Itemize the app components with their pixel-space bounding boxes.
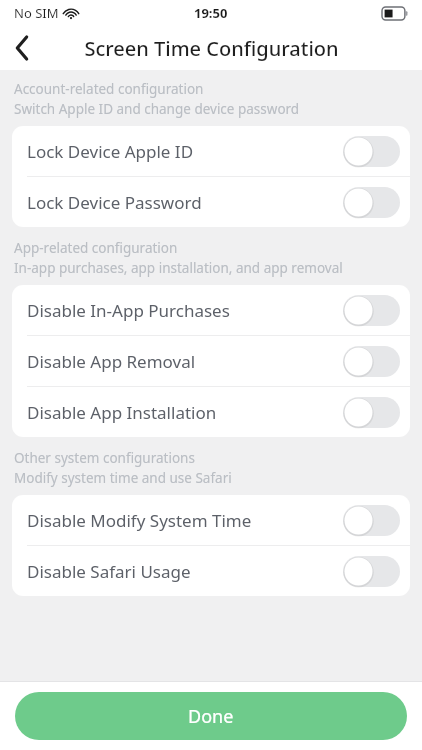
staticText: Done xyxy=(188,704,234,729)
button[interactable]: Back xyxy=(0,26,44,70)
staticText: 19:50 xyxy=(194,4,228,22)
button[interactable]: Disable In-App Purchases xyxy=(12,285,410,335)
button[interactable]: Toggle xyxy=(343,187,400,218)
staticText: Disable Modify System Time xyxy=(27,509,252,532)
staticText: Lock Device Apple ID xyxy=(27,140,194,163)
staticText: Switch Apple ID and change device passwo… xyxy=(14,100,300,118)
button[interactable]: Toggle xyxy=(343,346,400,377)
button[interactable]: Toggle xyxy=(343,397,400,428)
staticText: Account-related configuration xyxy=(14,80,204,98)
button[interactable]: Toggle xyxy=(343,505,400,536)
staticText: Other system configurations xyxy=(14,449,195,467)
staticText: Modify system time and use Safari xyxy=(14,469,232,487)
button[interactable]: Disable Safari Usage xyxy=(12,546,410,596)
button[interactable]: Lock Device Apple ID xyxy=(12,126,410,176)
button[interactable]: Disable App Installation xyxy=(12,387,410,437)
button[interactable]: Disable App Removal xyxy=(12,336,410,386)
button[interactable]: Lock Device Password xyxy=(12,177,410,227)
button[interactable]: Disable Modify System Time xyxy=(12,495,410,545)
button[interactable]: Done xyxy=(15,692,407,740)
staticText: Disable App Removal xyxy=(27,350,196,373)
staticText: Disable In-App Purchases xyxy=(27,299,230,322)
button[interactable]: Toggle xyxy=(343,136,400,167)
staticText: Screen Time Configuration xyxy=(84,35,339,62)
button[interactable]: Toggle xyxy=(343,556,400,587)
staticText: Disable Safari Usage xyxy=(27,560,191,583)
staticText: Disable App Installation xyxy=(27,401,217,424)
staticText: App-related configuration xyxy=(14,239,178,257)
staticText: In-app purchases, app installation, and … xyxy=(14,259,343,277)
staticText: No SIM xyxy=(14,4,59,22)
button[interactable]: Toggle xyxy=(343,295,400,326)
staticText: Lock Device Password xyxy=(27,191,202,214)
